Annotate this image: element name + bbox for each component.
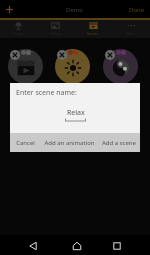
button[interactable]: Delete scene — [10, 50, 20, 60]
button[interactable]: Delete scene — [57, 50, 67, 60]
staticText: Cancel — [16, 139, 35, 147]
staticText: Add an animation — [44, 139, 95, 147]
staticText: Lamps — [13, 31, 24, 36]
staticText: Done — [129, 6, 145, 14]
button[interactable]: Scenes — [74, 20, 112, 38]
staticText: Relax — [67, 108, 85, 118]
staticText: Add a scene — [102, 139, 136, 147]
button[interactable]: Back — [24, 237, 41, 254]
staticText: Enter scene name: — [16, 88, 77, 98]
button[interactable]: Delete scene — [105, 50, 115, 60]
button[interactable]: Scene — [103, 49, 138, 84]
button[interactable]: Done — [129, 6, 145, 14]
button[interactable]: Lamps — [0, 20, 37, 38]
staticText: Scenes — [87, 31, 99, 36]
staticText: Gallery — [50, 31, 62, 36]
button[interactable]: Cancel — [10, 133, 40, 152]
button[interactable]: Gallery — [37, 20, 74, 38]
button[interactable]: Recents — [108, 237, 125, 254]
staticText: Demo — [66, 6, 84, 14]
button[interactable]: Add a scene — [98, 133, 140, 152]
button[interactable]: Add an animation — [40, 133, 98, 152]
staticText: More — [127, 31, 136, 36]
button[interactable]: Add — [1, 1, 17, 17]
button[interactable]: Scene — [55, 49, 90, 84]
button[interactable]: Home — [68, 237, 85, 254]
button[interactable]: Scene — [8, 49, 43, 84]
